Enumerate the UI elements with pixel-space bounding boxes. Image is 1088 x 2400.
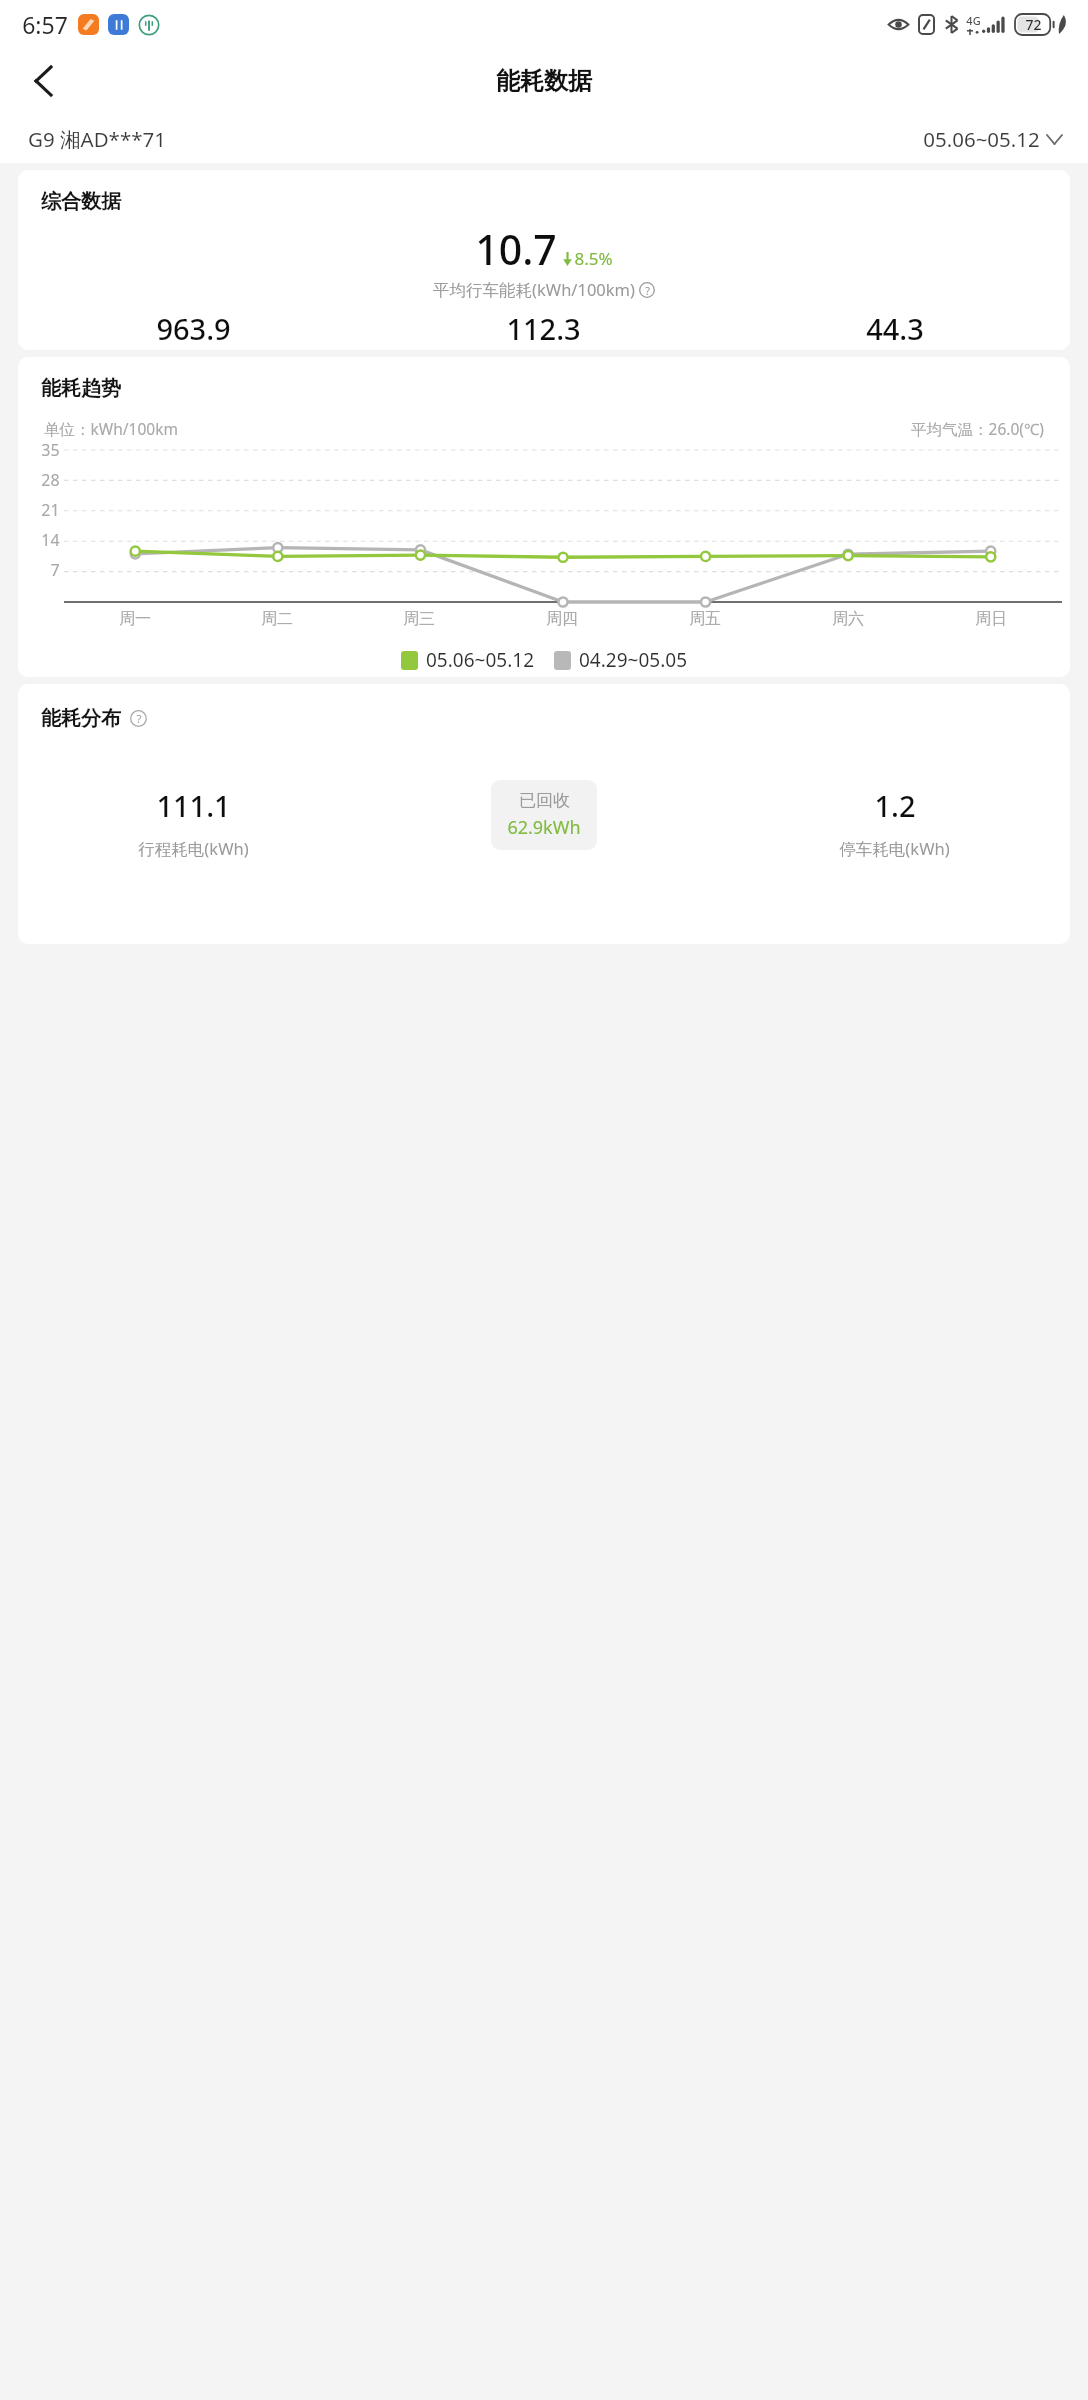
staticText: 已回收	[519, 790, 570, 811]
staticText: 14	[41, 529, 60, 551]
staticText: 1.2	[874, 786, 916, 825]
staticText: 7	[50, 559, 60, 581]
staticText: 平均气温：26.0(℃)	[911, 418, 1044, 439]
button[interactable]: G9 湘AD***71	[28, 125, 166, 153]
staticText: 963.9	[156, 309, 231, 348]
button[interactable]: 能耗趋势	[18, 357, 1070, 677]
staticText: 周五	[689, 609, 721, 629]
staticText: 112.3	[506, 309, 581, 348]
staticText: 8.5%	[574, 247, 613, 270]
staticText: 28	[41, 469, 60, 491]
staticText: 周三	[403, 609, 435, 629]
staticText: 能耗数据	[496, 66, 592, 96]
button[interactable]: 综合数据	[18, 170, 1070, 350]
staticText: ?	[136, 711, 142, 727]
staticText: 111.1	[156, 786, 231, 825]
staticText: 6:57	[22, 9, 68, 40]
staticText: 62.9kWh	[507, 815, 581, 840]
staticText: 周一	[119, 609, 151, 629]
staticText: 21	[41, 499, 60, 521]
button[interactable]: 963.9	[18, 309, 368, 350]
staticText: 能耗分布	[41, 706, 121, 731]
staticText: 4G	[966, 13, 981, 28]
staticText: 周四	[546, 609, 578, 629]
button[interactable]: 能耗分布	[18, 684, 1070, 944]
button[interactable]: 44.3	[719, 309, 1070, 350]
staticText: 72	[1025, 15, 1042, 34]
button[interactable]: Back	[16, 54, 70, 108]
staticText: 10.7	[475, 221, 557, 277]
staticText: 05.06~05.12	[426, 647, 534, 673]
staticText: 05.06~05.12	[923, 125, 1040, 153]
staticText: 停车耗电(kWh)	[839, 837, 950, 860]
staticText: ?	[645, 283, 650, 298]
staticText: 平均行车能耗(kWh/100km)	[433, 278, 635, 301]
staticText: G9 湘AD***71	[28, 125, 166, 153]
staticText: 周日	[975, 609, 1007, 629]
button[interactable]: 112.3	[368, 309, 719, 350]
staticText: 综合数据	[41, 189, 121, 214]
staticText: 周二	[261, 609, 293, 629]
staticText: 35	[41, 439, 60, 461]
staticText: 单位：kWh/100km	[44, 418, 178, 439]
staticText: 周六	[832, 609, 864, 629]
staticText: 能耗趋势	[41, 376, 121, 401]
staticText: 04.29~05.05	[579, 647, 687, 673]
button[interactable]: 05.06~05.12	[923, 125, 1062, 153]
staticText: 44.3	[866, 309, 924, 348]
staticText: 行程耗电(kWh)	[138, 837, 249, 860]
